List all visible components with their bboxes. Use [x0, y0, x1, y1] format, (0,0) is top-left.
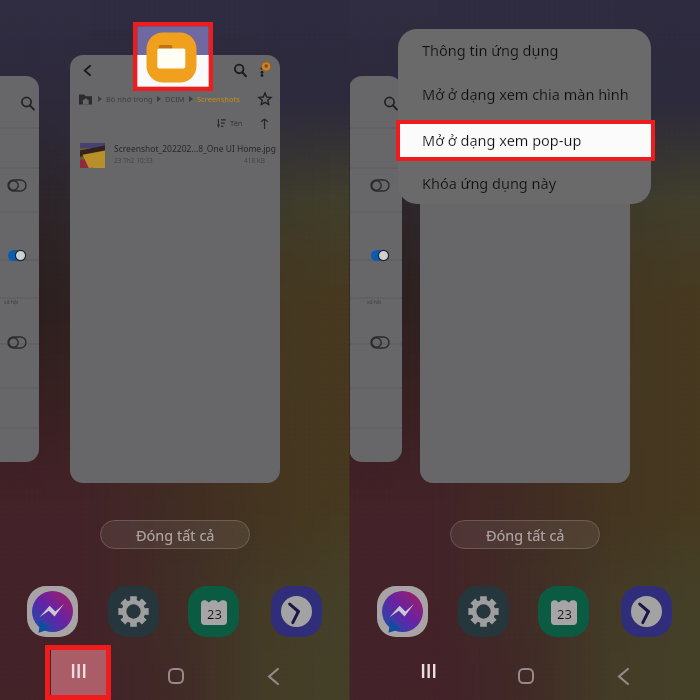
staticText: Screenshots	[197, 94, 240, 104]
button[interactable]: Mở ở dạng xem pop-up	[396, 120, 655, 161]
button[interactable]: My Files app icon	[133, 22, 213, 91]
button[interactable]: Thông tin ứng dụng	[398, 29, 651, 71]
button[interactable]: Screenshot_202202…8_One UI Home.jpg	[70, 137, 280, 173]
staticText: Tên	[580, 118, 593, 128]
staticText: DCIM	[515, 94, 535, 104]
staticText: Đóng tất cả	[136, 525, 215, 545]
staticText: Screenshot_202202…8_One UI Home.jpg	[464, 143, 627, 155]
button[interactable]: Mở ở dạng xem chia màn hình	[398, 73, 651, 115]
button[interactable]: Messenger	[27, 586, 78, 637]
staticText: Mở ở dạng xem chia màn hình	[422, 84, 629, 104]
button[interactable]: Đóng tất cả	[100, 520, 250, 549]
button[interactable]: Settings	[108, 586, 159, 637]
button[interactable]: Home	[150, 650, 202, 700]
staticText: Screenshots	[547, 94, 590, 104]
staticText: Screenshot_202202…8_One UI Home.jpg	[114, 143, 277, 155]
staticText: 418 KB	[244, 156, 266, 165]
button[interactable]: Messenger	[377, 586, 428, 637]
staticText: 23	[207, 605, 222, 623]
staticText: xã hội	[367, 299, 382, 306]
button[interactable]: Back	[77, 60, 97, 80]
staticText: Bộ nhớ trong	[456, 94, 503, 104]
staticText: 23	[557, 605, 572, 623]
button[interactable]: Back	[70, 55, 280, 483]
staticText: 23 Th2 10:33	[114, 156, 153, 165]
button[interactable]: Settings	[458, 586, 509, 637]
staticText: DCIM	[165, 94, 185, 104]
button[interactable]: Clock	[271, 586, 322, 637]
button[interactable]: Back	[420, 55, 630, 483]
button[interactable]: Clock	[621, 586, 672, 637]
button[interactable]: xã hội	[0, 76, 39, 462]
staticText: Đóng tất cả	[486, 525, 565, 545]
button[interactable]: Back	[247, 650, 299, 700]
staticText: Mở ở dạng xem pop-up	[422, 130, 582, 150]
button[interactable]: Calendar	[538, 586, 589, 637]
staticText: xã hội	[4, 299, 19, 306]
button[interactable]: Recents	[396, 645, 460, 697]
button[interactable]: Recents	[46, 645, 110, 697]
staticText: 23 Th2 10:33	[464, 156, 503, 165]
button[interactable]: Đóng tất cả	[450, 520, 600, 549]
button[interactable]: More options	[252, 57, 274, 79]
button[interactable]: Screenshot_202202…8_One UI Home.jpg	[420, 137, 630, 173]
button[interactable]: Calendar	[188, 586, 239, 637]
button[interactable]: Home	[500, 650, 552, 700]
button[interactable]: Back	[597, 650, 649, 700]
button[interactable]: Search	[230, 60, 250, 80]
button[interactable]: Khóa ứng dụng này	[398, 162, 651, 204]
staticText: Khóa ứng dụng này	[422, 173, 557, 193]
button[interactable]: Recents button highlight	[45, 645, 111, 700]
staticText: 418 KB	[594, 156, 616, 165]
staticText: Thông tin ứng dụng	[422, 40, 559, 60]
button[interactable]: xã hội	[350, 76, 402, 462]
staticText: Bộ nhớ trong	[106, 94, 153, 104]
staticText: Tên	[230, 118, 243, 128]
